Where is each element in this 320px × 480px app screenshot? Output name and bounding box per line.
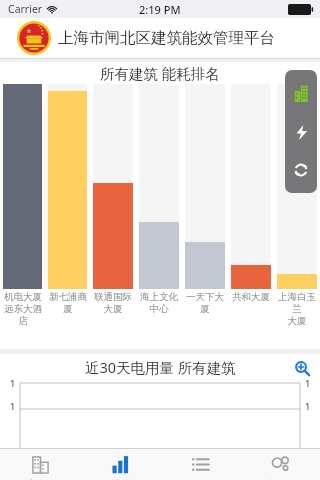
button[interactable] [231, 84, 271, 289]
staticText: 1 [10, 377, 16, 389]
staticText: 1 [305, 377, 311, 389]
staticText: 上海白玉兰 大厦 [275, 291, 319, 326]
staticText: 概况 [30, 478, 50, 480]
button[interactable]: Zoom in [291, 357, 313, 379]
staticText: Carrier [8, 2, 43, 16]
staticText: 设置 [270, 478, 290, 480]
staticText: 1 [10, 400, 16, 412]
button[interactable]: Buildings [286, 78, 316, 108]
staticText: 一天下大 厦 [186, 291, 224, 314]
staticText: 所有建筑 能耗排名 [100, 63, 220, 83]
button[interactable] [185, 84, 225, 289]
button[interactable]: 排名 [80, 449, 160, 480]
button[interactable]: Energy [286, 117, 316, 147]
staticText: 共和大厦 [232, 291, 270, 303]
button[interactable]: Refresh [286, 155, 316, 185]
staticText: 1 [305, 400, 311, 412]
button[interactable]: 建筑 [160, 449, 240, 480]
staticText: 排名 [110, 478, 130, 480]
button[interactable]: 设置 [240, 449, 320, 480]
staticText: 上海市闸北区建筑能效管理平台 [58, 28, 275, 48]
staticText: 2:19 PM [139, 2, 181, 17]
staticText: 近30天电用量 所有建筑 [85, 357, 236, 377]
staticText: 机电大厦 远东大酒 店 [4, 291, 42, 326]
staticText: 联通国际 大厦 [94, 291, 132, 314]
button[interactable] [277, 84, 317, 289]
button[interactable] [139, 84, 179, 289]
button[interactable]: 概况 [0, 449, 80, 480]
button[interactable] [93, 84, 133, 289]
button[interactable] [48, 84, 87, 289]
staticText: 新七浦商 厦 [49, 291, 87, 314]
staticText: 海上文化 中心 [140, 291, 178, 314]
